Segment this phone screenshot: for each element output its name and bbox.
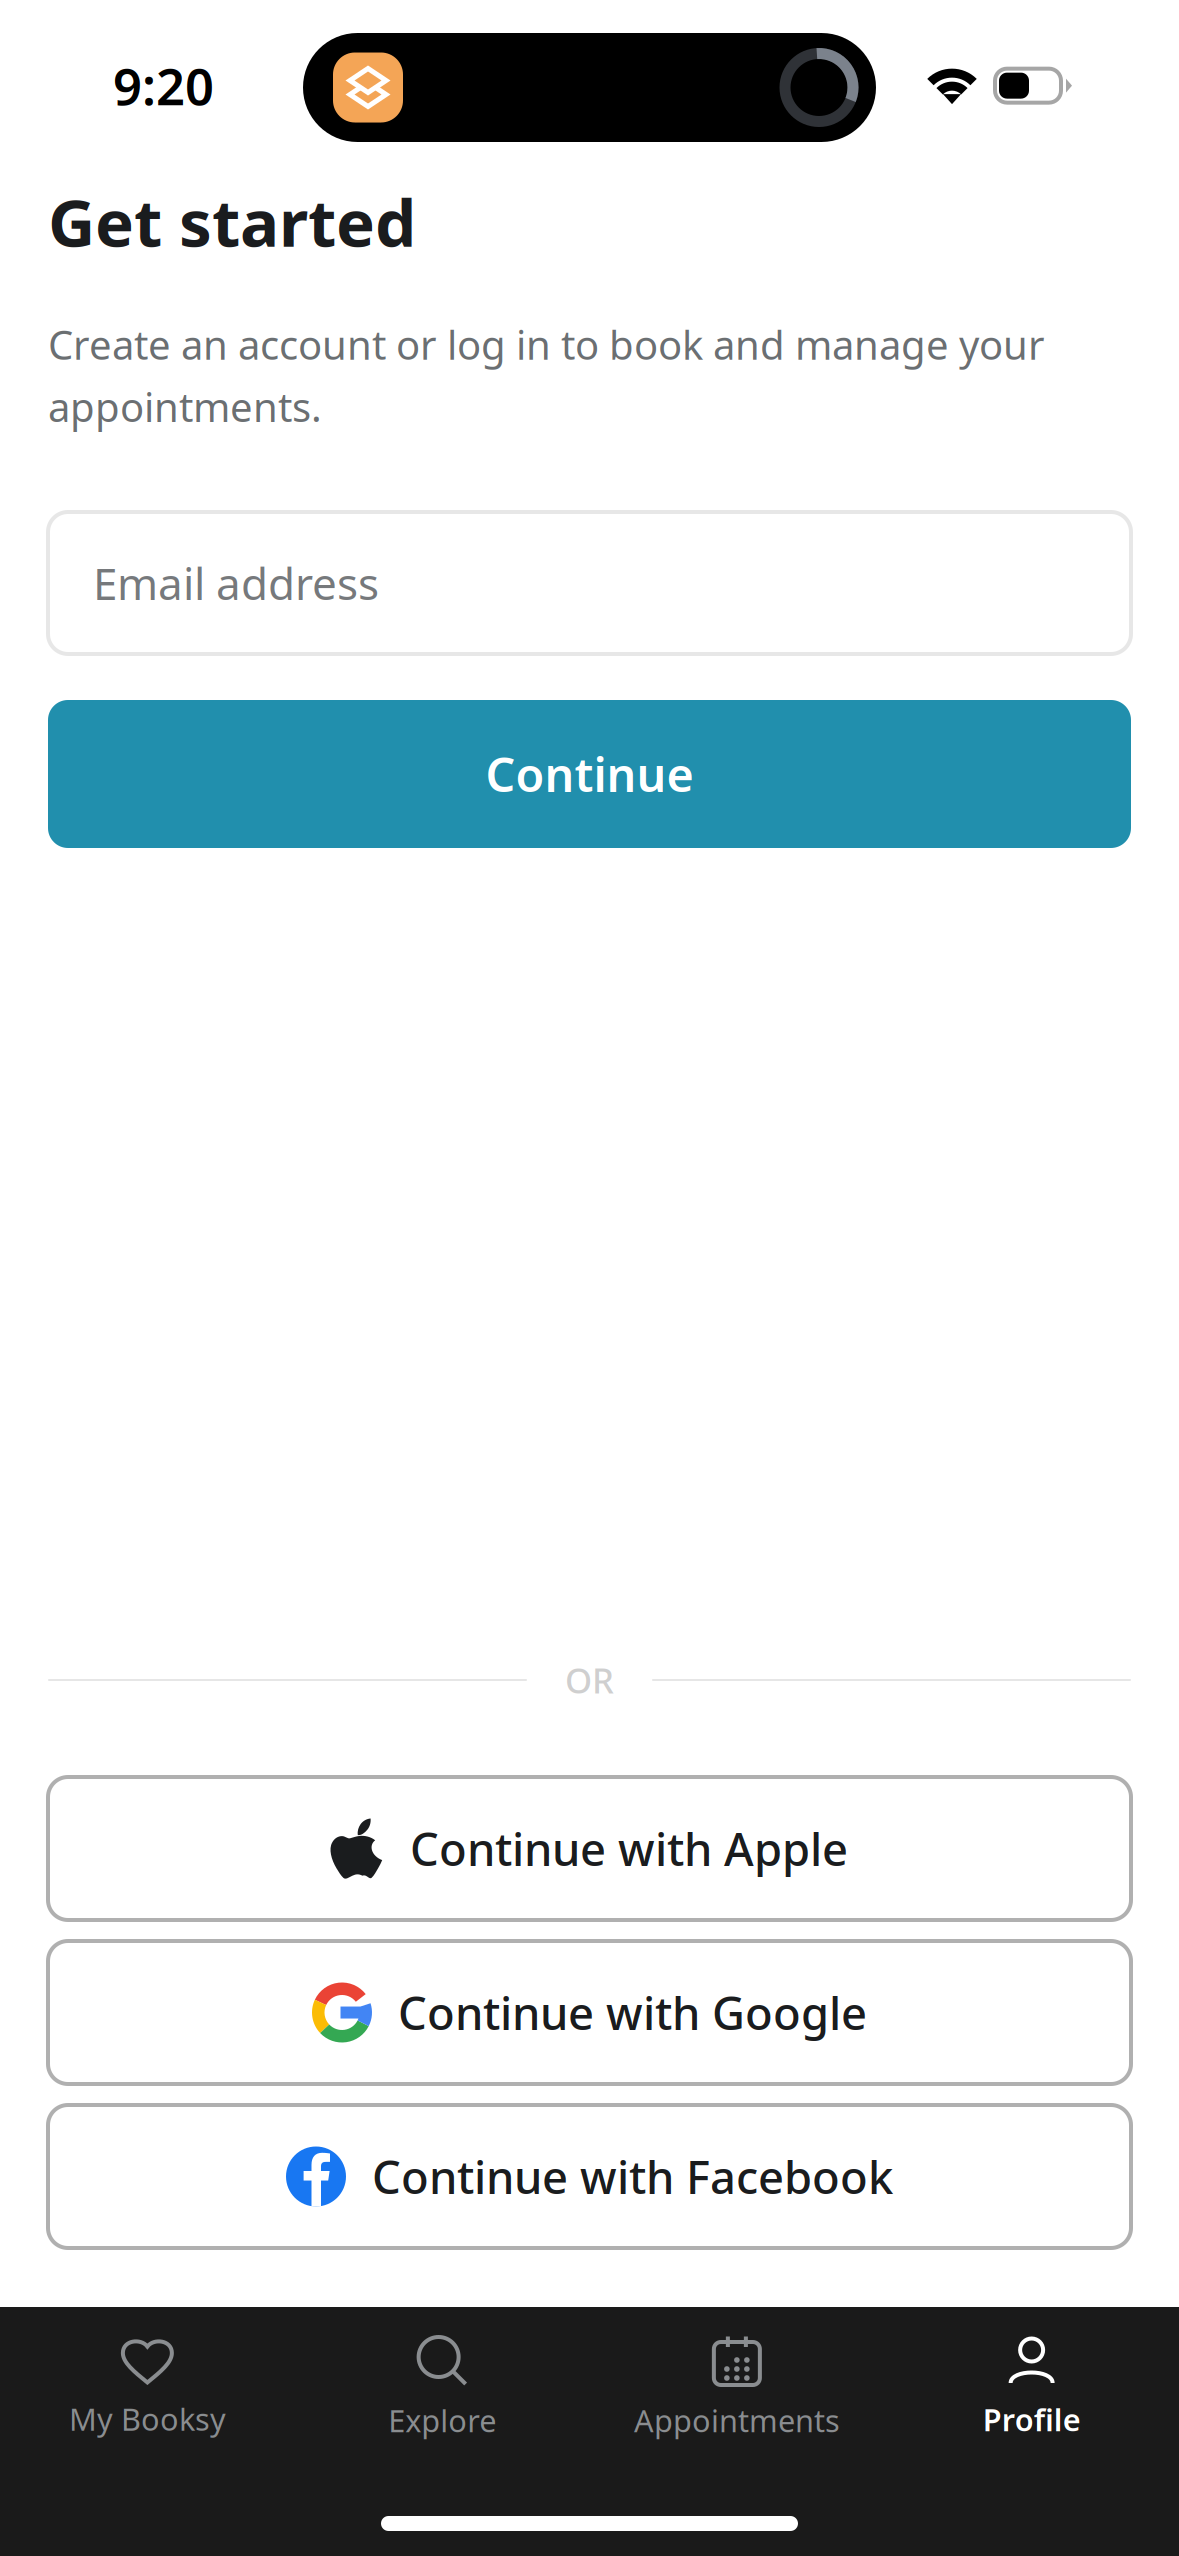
button[interactable]: Continue with Google xyxy=(48,1941,1131,2084)
staticText: OR xyxy=(565,1657,614,1703)
staticText: Explore xyxy=(388,2400,496,2441)
staticText: Continue xyxy=(485,743,693,805)
staticText: Appointments xyxy=(634,2400,840,2441)
button[interactable]: Email address xyxy=(48,512,1131,654)
staticText: 9:20 xyxy=(113,52,214,119)
staticText: Continue with Facebook xyxy=(372,2146,893,2207)
staticText: Profile xyxy=(983,2399,1081,2440)
button[interactable]: Appointments xyxy=(589,2307,884,2459)
button[interactable]: Continue with Apple xyxy=(48,1777,1131,1920)
staticText: Email address xyxy=(93,554,379,612)
staticText: My Booksy xyxy=(69,2398,226,2439)
button[interactable]: Profile xyxy=(884,2308,1179,2458)
staticText: Continue with Apple xyxy=(410,1818,848,1879)
staticText: Create an account or log in to book and … xyxy=(48,318,1045,433)
staticText: Get started xyxy=(48,178,416,265)
button[interactable]: Explore xyxy=(295,2307,590,2459)
button[interactable]: Continue with Facebook xyxy=(48,2105,1131,2248)
button[interactable]: Continue xyxy=(48,700,1131,848)
button[interactable]: My Booksy xyxy=(0,2308,295,2457)
staticText: Continue with Google xyxy=(398,1982,867,2043)
